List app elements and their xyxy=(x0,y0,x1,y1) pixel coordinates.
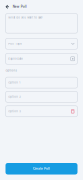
button[interactable]: Back xyxy=(5,2,29,11)
staticText: Option 1 xyxy=(8,81,20,84)
staticText: Create Poll xyxy=(33,167,50,171)
staticText: Option 3 xyxy=(8,110,21,113)
staticText: New Poll xyxy=(13,5,27,9)
staticText: Option 2 xyxy=(8,95,21,98)
button[interactable]: Expiry Date xyxy=(5,53,77,64)
button[interactable]: Create Poll xyxy=(5,163,77,174)
staticText: Expiry Date xyxy=(8,57,23,60)
staticText: Options xyxy=(5,69,16,72)
staticText: What do you want to ask? xyxy=(8,16,42,19)
staticText: Poll Type xyxy=(8,42,22,45)
button[interactable]: Remove option xyxy=(71,109,75,113)
button[interactable]: Poll Type xyxy=(5,38,77,49)
